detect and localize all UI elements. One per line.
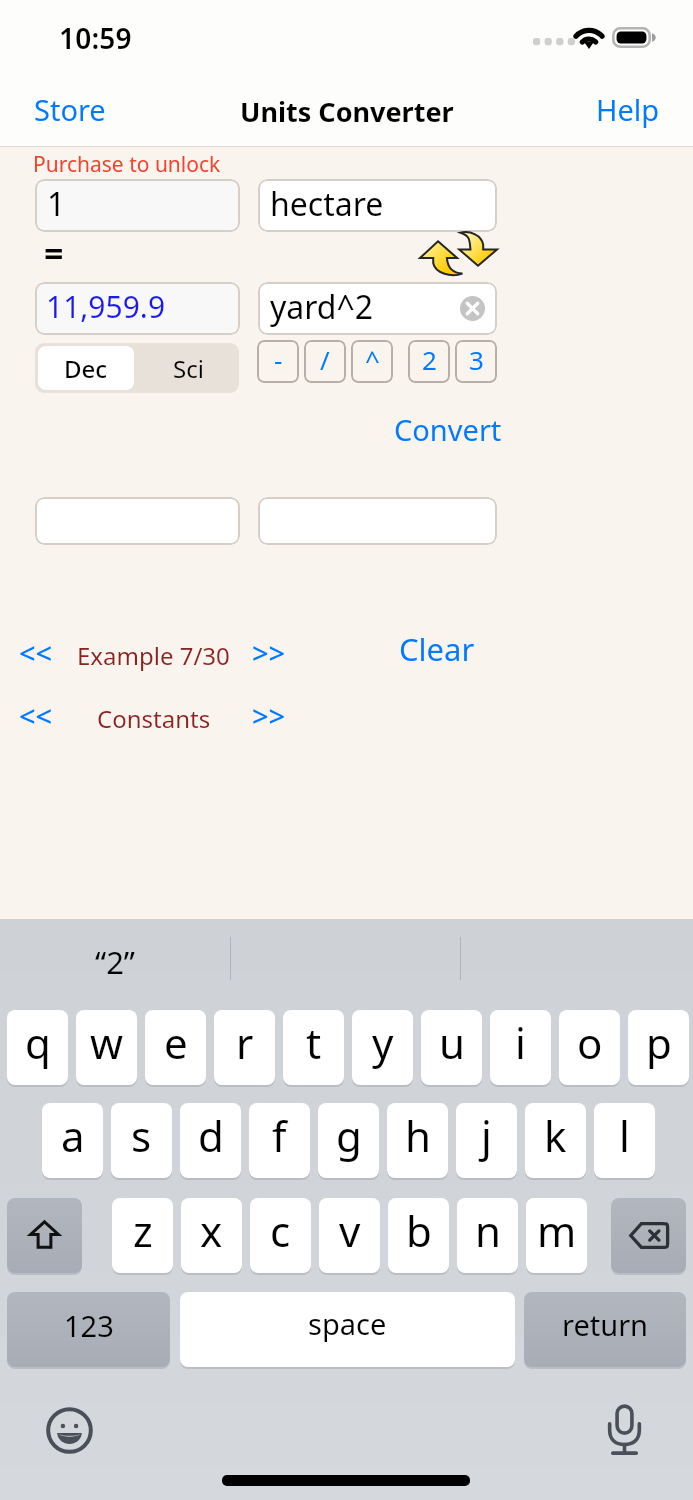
button[interactable]: hectare bbox=[258, 179, 497, 232]
button[interactable]: g bbox=[318, 1103, 379, 1178]
staticText: v bbox=[339, 1202, 361, 1259]
staticText: b bbox=[406, 1202, 432, 1259]
staticText: << bbox=[19, 633, 53, 672]
staticText: Store bbox=[34, 90, 106, 129]
staticText: Convert bbox=[394, 410, 502, 449]
button[interactable]: f bbox=[249, 1103, 310, 1178]
button[interactable]: 11,959.9 bbox=[35, 282, 240, 335]
button[interactable]: space bbox=[180, 1292, 515, 1367]
button[interactable]: Help bbox=[576, 82, 680, 137]
staticText: c bbox=[270, 1202, 291, 1259]
staticText: j bbox=[481, 1107, 492, 1164]
button[interactable]: e bbox=[145, 1010, 206, 1085]
button[interactable]: Swap units bbox=[416, 234, 500, 278]
staticText: 123 bbox=[64, 1306, 114, 1345]
button[interactable]: p bbox=[628, 1010, 689, 1085]
staticText: w bbox=[90, 1014, 124, 1071]
button[interactable]: ^ bbox=[351, 340, 393, 383]
button[interactable]: 2 bbox=[408, 340, 450, 383]
button[interactable]: x bbox=[181, 1198, 242, 1273]
button[interactable]: o bbox=[559, 1010, 620, 1085]
staticText: t bbox=[306, 1014, 322, 1071]
staticText: d bbox=[198, 1107, 224, 1164]
button[interactable]: v bbox=[319, 1198, 380, 1273]
button[interactable]: / bbox=[304, 340, 346, 383]
button[interactable]: m bbox=[526, 1198, 587, 1273]
button[interactable]: << bbox=[11, 629, 61, 676]
staticText: 3 bbox=[469, 342, 484, 377]
staticText: 11,959.9 bbox=[46, 286, 166, 327]
button[interactable]: >> bbox=[244, 692, 294, 739]
button[interactable]: b bbox=[388, 1198, 449, 1273]
staticText: s bbox=[131, 1107, 152, 1164]
button[interactable]: 3 bbox=[455, 340, 497, 383]
button[interactable]: >> bbox=[244, 629, 294, 676]
button[interactable]: u bbox=[421, 1010, 482, 1085]
staticText: “2” bbox=[95, 941, 135, 983]
staticText: Clear bbox=[399, 628, 475, 670]
button[interactable]: h bbox=[387, 1103, 448, 1178]
button[interactable]: Clear bbox=[393, 622, 481, 676]
staticText: ^ bbox=[365, 342, 380, 377]
button[interactable]: i bbox=[490, 1010, 551, 1085]
button[interactable]: Backspace bbox=[611, 1198, 686, 1273]
button[interactable]: z bbox=[112, 1198, 173, 1273]
button[interactable]: s bbox=[111, 1103, 172, 1178]
button[interactable]: a bbox=[42, 1103, 103, 1178]
button[interactable]: l bbox=[594, 1103, 655, 1178]
button[interactable]: Convert bbox=[388, 404, 508, 455]
button[interactable]: return bbox=[524, 1292, 686, 1367]
button[interactable]: Dec bbox=[38, 346, 134, 390]
button[interactable] bbox=[35, 497, 240, 545]
staticText: x bbox=[200, 1202, 223, 1259]
button[interactable]: Emoji keyboard bbox=[46, 1407, 93, 1454]
staticText: o bbox=[577, 1014, 603, 1071]
button[interactable]: k bbox=[525, 1103, 586, 1178]
button[interactable]: w bbox=[76, 1010, 137, 1085]
button[interactable]: Dictation bbox=[602, 1404, 647, 1456]
staticText: u bbox=[439, 1014, 465, 1071]
staticText: 2 bbox=[422, 342, 437, 377]
staticText: Dec bbox=[64, 352, 108, 385]
staticText: Constants bbox=[97, 702, 211, 735]
button[interactable]: y bbox=[352, 1010, 413, 1085]
staticText: >> bbox=[252, 633, 286, 672]
staticText: 10:59 bbox=[59, 19, 132, 57]
staticText: e bbox=[164, 1014, 188, 1071]
button[interactable]: Store bbox=[14, 82, 126, 137]
staticText: hectare bbox=[270, 182, 384, 226]
button[interactable]: Clear text bbox=[460, 296, 485, 321]
staticText: q bbox=[25, 1014, 51, 1071]
staticText: n bbox=[475, 1202, 501, 1259]
staticText: m bbox=[537, 1202, 577, 1259]
staticText: r bbox=[236, 1014, 254, 1071]
button[interactable]: c bbox=[250, 1198, 311, 1273]
staticText: z bbox=[133, 1202, 153, 1259]
staticText: Help bbox=[596, 90, 660, 129]
staticText: f bbox=[272, 1107, 287, 1164]
button[interactable]: d bbox=[180, 1103, 241, 1178]
staticText: k bbox=[544, 1107, 567, 1164]
staticText: Purchase to unlock bbox=[33, 150, 221, 179]
button[interactable]: << bbox=[11, 692, 61, 739]
staticText: << bbox=[19, 696, 53, 735]
button[interactable]: 123 bbox=[7, 1292, 170, 1367]
button[interactable]: t bbox=[283, 1010, 344, 1085]
button[interactable]: n bbox=[457, 1198, 518, 1273]
staticText: l bbox=[619, 1107, 630, 1164]
button[interactable]: 1 bbox=[35, 179, 240, 232]
button[interactable]: - bbox=[257, 340, 299, 383]
button[interactable]: q bbox=[7, 1010, 68, 1085]
button[interactable]: yard^2 bbox=[258, 282, 497, 335]
button[interactable]: Sci bbox=[137, 343, 239, 393]
staticText: = bbox=[44, 230, 64, 276]
staticText: a bbox=[61, 1107, 85, 1164]
button[interactable]: Shift bbox=[7, 1198, 82, 1273]
button[interactable]: j bbox=[456, 1103, 517, 1178]
staticText: space bbox=[308, 1304, 387, 1343]
button[interactable] bbox=[258, 497, 497, 545]
staticText: Example 7/30 bbox=[77, 639, 230, 672]
staticText: >> bbox=[252, 696, 286, 735]
button[interactable]: r bbox=[214, 1010, 275, 1085]
staticText: h bbox=[405, 1107, 431, 1164]
